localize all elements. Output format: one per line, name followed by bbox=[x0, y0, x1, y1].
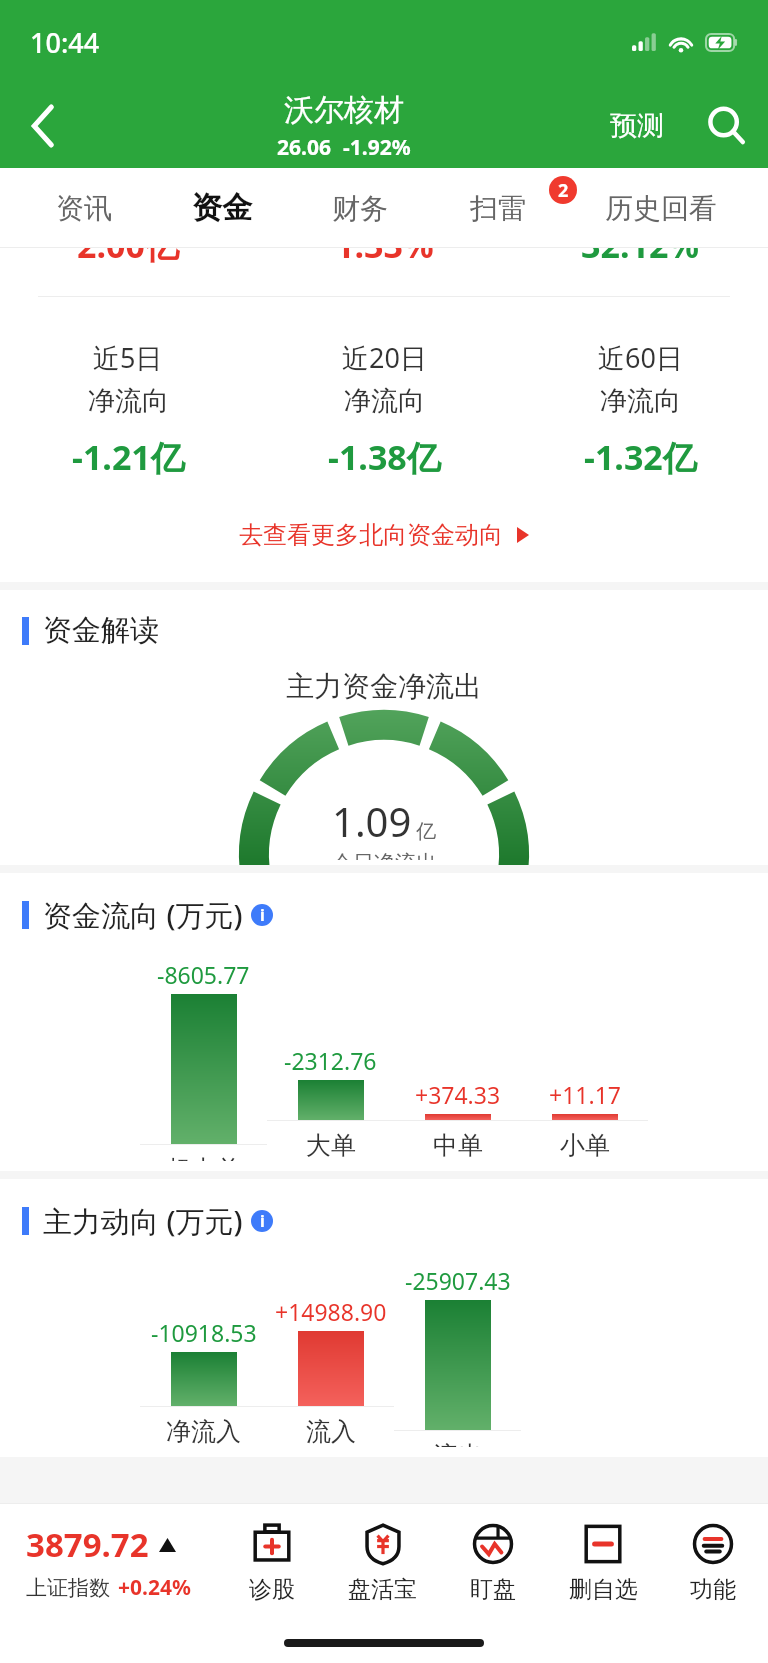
button[interactable]: 功能 bbox=[658, 1517, 768, 1608]
staticText: 净流入 bbox=[166, 1416, 241, 1447]
staticText: 1.33% bbox=[335, 248, 434, 268]
staticText: 净流向 bbox=[88, 384, 169, 418]
staticText: 净流向 bbox=[600, 384, 681, 418]
staticText: +11.17 bbox=[549, 1079, 621, 1110]
staticText: 1.09 bbox=[332, 794, 412, 848]
staticText: 上证指数 bbox=[26, 1575, 110, 1601]
staticText: 流入 bbox=[306, 1416, 356, 1447]
staticText: -10918.53 bbox=[151, 1317, 257, 1348]
button[interactable]: 资讯 bbox=[14, 168, 153, 248]
staticText: 今日净流出 bbox=[332, 850, 437, 860]
button[interactable]: 盯盘 bbox=[438, 1517, 548, 1608]
staticText: 资金解读 bbox=[43, 612, 159, 649]
staticText: -25907.43 bbox=[405, 1265, 511, 1296]
staticText: +374.33 bbox=[415, 1079, 501, 1110]
staticText: 超大单 bbox=[166, 1154, 241, 1161]
staticText: -1.92% bbox=[343, 133, 411, 162]
staticText: 32.12% bbox=[581, 248, 700, 268]
staticText: 资讯 bbox=[56, 191, 112, 226]
button[interactable]: 诊股 bbox=[216, 1517, 327, 1608]
staticText: 近60日 bbox=[598, 339, 683, 376]
button[interactable]: 历史回看 bbox=[567, 168, 754, 248]
staticText: 财务 bbox=[332, 191, 388, 226]
button[interactable]: 删自选 bbox=[548, 1517, 658, 1608]
button[interactable]: 预测 bbox=[602, 84, 672, 168]
staticText: 3879.72 bbox=[26, 1522, 149, 1567]
staticText: +14988.90 bbox=[275, 1296, 387, 1327]
staticText: 诊股 bbox=[249, 1575, 295, 1604]
staticText: 2.00亿 bbox=[77, 248, 179, 268]
button[interactable]: 扫雷 bbox=[429, 168, 567, 248]
staticText: -8605.77 bbox=[157, 959, 250, 990]
staticText: 26.06 bbox=[277, 133, 331, 162]
button[interactable]: 3879.72 bbox=[0, 1522, 216, 1602]
button[interactable]: Info bbox=[251, 904, 273, 926]
staticText: 资金 bbox=[192, 189, 252, 227]
staticText: 10:44 bbox=[30, 24, 100, 61]
staticText: 历史回看 bbox=[605, 191, 717, 226]
staticText: 小单 bbox=[560, 1130, 610, 1161]
staticText: +0.24% bbox=[118, 1573, 191, 1602]
staticText: 预测 bbox=[610, 109, 664, 143]
staticText: 净流向 bbox=[344, 384, 425, 418]
staticText: 主力动向 (万元) bbox=[43, 1201, 243, 1241]
staticText: 资金流向 (万元) bbox=[43, 895, 243, 935]
staticText: i bbox=[260, 1210, 265, 1232]
staticText: 亿 bbox=[416, 819, 436, 844]
staticText: -1.38亿 bbox=[328, 434, 441, 480]
button[interactable]: Info bbox=[251, 1210, 273, 1232]
staticText: 近5日 bbox=[93, 339, 163, 376]
staticText: 中单 bbox=[433, 1130, 483, 1161]
staticText: 盯盘 bbox=[470, 1575, 516, 1604]
staticText: 大单 bbox=[306, 1130, 356, 1161]
button[interactable]: Search bbox=[684, 84, 768, 168]
staticText: -1.32亿 bbox=[584, 434, 697, 480]
staticText: 主力资金净流出 bbox=[286, 669, 482, 704]
staticText: 近20日 bbox=[342, 339, 427, 376]
staticText: i bbox=[260, 904, 265, 926]
button[interactable]: 财务 bbox=[291, 168, 429, 248]
staticText: 去查看更多北向资金动向 bbox=[239, 520, 503, 550]
button[interactable]: 资金 bbox=[153, 168, 291, 248]
button[interactable]: 盘活宝 bbox=[327, 1517, 438, 1608]
staticText: -2312.76 bbox=[284, 1045, 377, 1076]
staticText: 功能 bbox=[690, 1575, 736, 1604]
staticText: 2 bbox=[558, 178, 569, 203]
staticText: 沃尔核材 bbox=[284, 91, 404, 129]
button[interactable]: Back bbox=[0, 84, 86, 168]
button[interactable]: 去查看更多北向资金动向 bbox=[0, 514, 768, 556]
staticText: 扫雷 bbox=[470, 191, 526, 226]
staticText: 流出 bbox=[433, 1440, 483, 1447]
staticText: 删自选 bbox=[569, 1575, 638, 1604]
staticText: 盘活宝 bbox=[348, 1575, 417, 1604]
staticText: -1.21亿 bbox=[72, 434, 185, 480]
